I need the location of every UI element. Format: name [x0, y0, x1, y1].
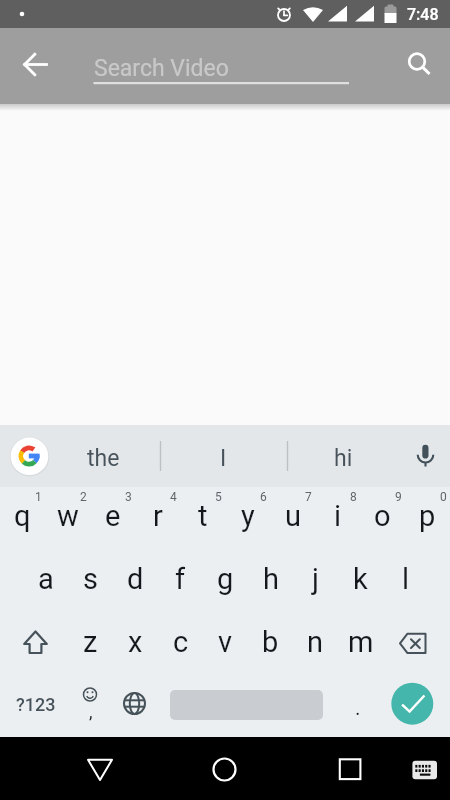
staticText: t	[198, 499, 208, 533]
staticText: n	[307, 625, 324, 659]
button[interactable]: o	[360, 485, 405, 547]
button[interactable]: q	[0, 485, 45, 547]
button[interactable]	[388, 680, 436, 728]
button[interactable]	[392, 38, 440, 86]
button[interactable]	[80, 40, 370, 92]
staticText: the	[87, 445, 120, 472]
staticText: 5	[215, 490, 222, 504]
button[interactable]	[68, 675, 112, 737]
staticText: I	[220, 445, 227, 472]
button[interactable]	[325, 742, 375, 794]
button[interactable]: e	[90, 485, 135, 547]
button[interactable]	[289, 428, 399, 484]
button[interactable]: f	[158, 548, 203, 610]
staticText: 4	[170, 490, 177, 504]
staticText: m	[348, 625, 374, 659]
staticText: 9	[395, 490, 402, 504]
staticText: c	[173, 625, 189, 659]
staticText: 8	[350, 490, 357, 504]
staticText: q	[14, 499, 31, 533]
staticText: 7	[305, 490, 312, 504]
staticText: l	[402, 562, 410, 596]
staticText: ,	[89, 701, 93, 722]
button[interactable]	[10, 40, 60, 90]
button[interactable]	[400, 430, 446, 482]
button[interactable]: b	[248, 610, 293, 673]
button[interactable]	[382, 612, 450, 674]
staticText: 1	[35, 490, 42, 504]
button[interactable]	[200, 742, 250, 794]
staticText: .	[355, 696, 361, 721]
button[interactable]: g	[203, 548, 248, 610]
staticText: h	[263, 562, 279, 596]
button[interactable]: u	[270, 485, 315, 547]
staticText: x	[128, 625, 143, 659]
button[interactable]: v	[203, 610, 248, 673]
staticText: 3	[125, 490, 132, 504]
button[interactable]: x	[113, 610, 158, 673]
button[interactable]	[0, 675, 68, 737]
staticText: 0	[440, 490, 447, 504]
staticText: y	[241, 499, 255, 533]
staticText: hi	[334, 445, 353, 472]
button[interactable]	[8, 435, 50, 477]
staticText: a	[38, 562, 54, 596]
button[interactable]: i	[315, 485, 360, 547]
staticText: g	[217, 562, 234, 596]
staticText: r	[153, 499, 163, 533]
button[interactable]	[112, 675, 156, 737]
button[interactable]: h	[248, 548, 293, 610]
button[interactable]: k	[338, 548, 383, 610]
staticText: f	[175, 562, 186, 596]
button[interactable]: n	[293, 610, 338, 673]
staticText: ?123	[16, 694, 56, 715]
staticText: w	[57, 499, 79, 533]
staticText: 6	[260, 490, 267, 504]
staticText: b	[262, 625, 279, 659]
button[interactable]	[403, 748, 443, 790]
button[interactable]: z	[68, 610, 113, 673]
button[interactable]	[160, 675, 333, 737]
button[interactable]	[162, 428, 285, 484]
button[interactable]	[0, 612, 68, 674]
button[interactable]: l	[383, 548, 428, 610]
button[interactable]: w	[45, 485, 90, 547]
staticText: p	[419, 499, 436, 533]
button[interactable]	[75, 742, 125, 794]
button[interactable]: j	[293, 548, 338, 610]
staticText: u	[285, 499, 301, 533]
button[interactable]: p	[405, 485, 450, 547]
button[interactable]: s	[68, 548, 113, 610]
staticText: d	[127, 562, 144, 596]
button[interactable]: r	[135, 485, 180, 547]
staticText: k	[353, 562, 368, 596]
button[interactable]: d	[113, 548, 158, 610]
staticText: 7:48	[407, 5, 439, 24]
staticText: j	[312, 562, 319, 596]
button[interactable]	[55, 428, 160, 484]
staticText: z	[83, 625, 98, 659]
staticText: v	[218, 625, 233, 659]
staticText: o	[374, 499, 391, 533]
button[interactable]: a	[23, 548, 68, 610]
button[interactable]: m	[338, 610, 383, 673]
button[interactable]	[335, 675, 379, 737]
button[interactable]: y	[225, 485, 270, 547]
button[interactable]: t	[180, 485, 225, 547]
staticText: 2	[80, 490, 87, 504]
button[interactable]: c	[158, 610, 203, 673]
staticText: s	[83, 562, 98, 596]
staticText: e	[105, 499, 121, 533]
staticText: i	[334, 499, 342, 533]
staticText: Search Video	[94, 55, 229, 82]
